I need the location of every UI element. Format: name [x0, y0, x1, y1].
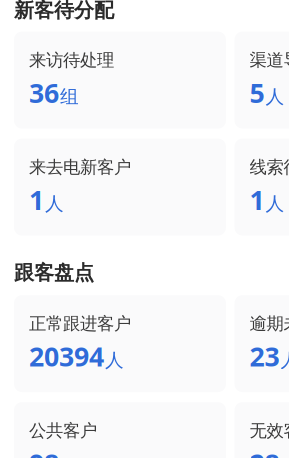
- button[interactable]: 线索待处理: [234, 139, 289, 236]
- button[interactable]: 渠道导客待处理: [234, 32, 289, 129]
- staticText: 28: [249, 445, 279, 458]
- staticText: 来访待处理: [29, 50, 114, 71]
- staticText: 人: [265, 85, 284, 108]
- staticText: 渠道导客待处理: [249, 50, 289, 71]
- staticText: 20394: [29, 338, 104, 374]
- staticText: 23: [249, 338, 279, 374]
- staticText: 36: [29, 75, 59, 110]
- button[interactable]: 来访待处理: [14, 32, 226, 129]
- staticText: 人: [105, 349, 124, 372]
- staticText: 98: [29, 445, 59, 458]
- staticText: 来去电新客户: [29, 157, 131, 178]
- staticText: 跟客盘点: [14, 261, 94, 285]
- button[interactable]: 来去电新客户: [14, 139, 226, 236]
- staticText: 人: [265, 192, 284, 215]
- staticText: 公共客户: [29, 420, 97, 441]
- button[interactable]: 公共客户: [14, 402, 226, 458]
- button[interactable]: 正常跟进客户: [14, 295, 226, 392]
- button[interactable]: 逾期未跟进客户: [234, 295, 289, 392]
- staticText: 正常跟进客户: [29, 313, 131, 334]
- staticText: 无效客户: [249, 420, 289, 441]
- staticText: 新客待分配: [14, 0, 114, 23]
- staticText: 线索待处理: [249, 157, 289, 178]
- staticText: 1: [29, 182, 44, 217]
- staticText: 1: [249, 182, 264, 217]
- staticText: 5: [249, 75, 264, 110]
- staticText: 逾期未跟进客户: [249, 313, 289, 334]
- staticText: 人: [45, 192, 64, 215]
- staticText: 人: [280, 349, 289, 372]
- staticText: 组: [60, 85, 79, 108]
- button[interactable]: 无效客户: [234, 402, 289, 458]
